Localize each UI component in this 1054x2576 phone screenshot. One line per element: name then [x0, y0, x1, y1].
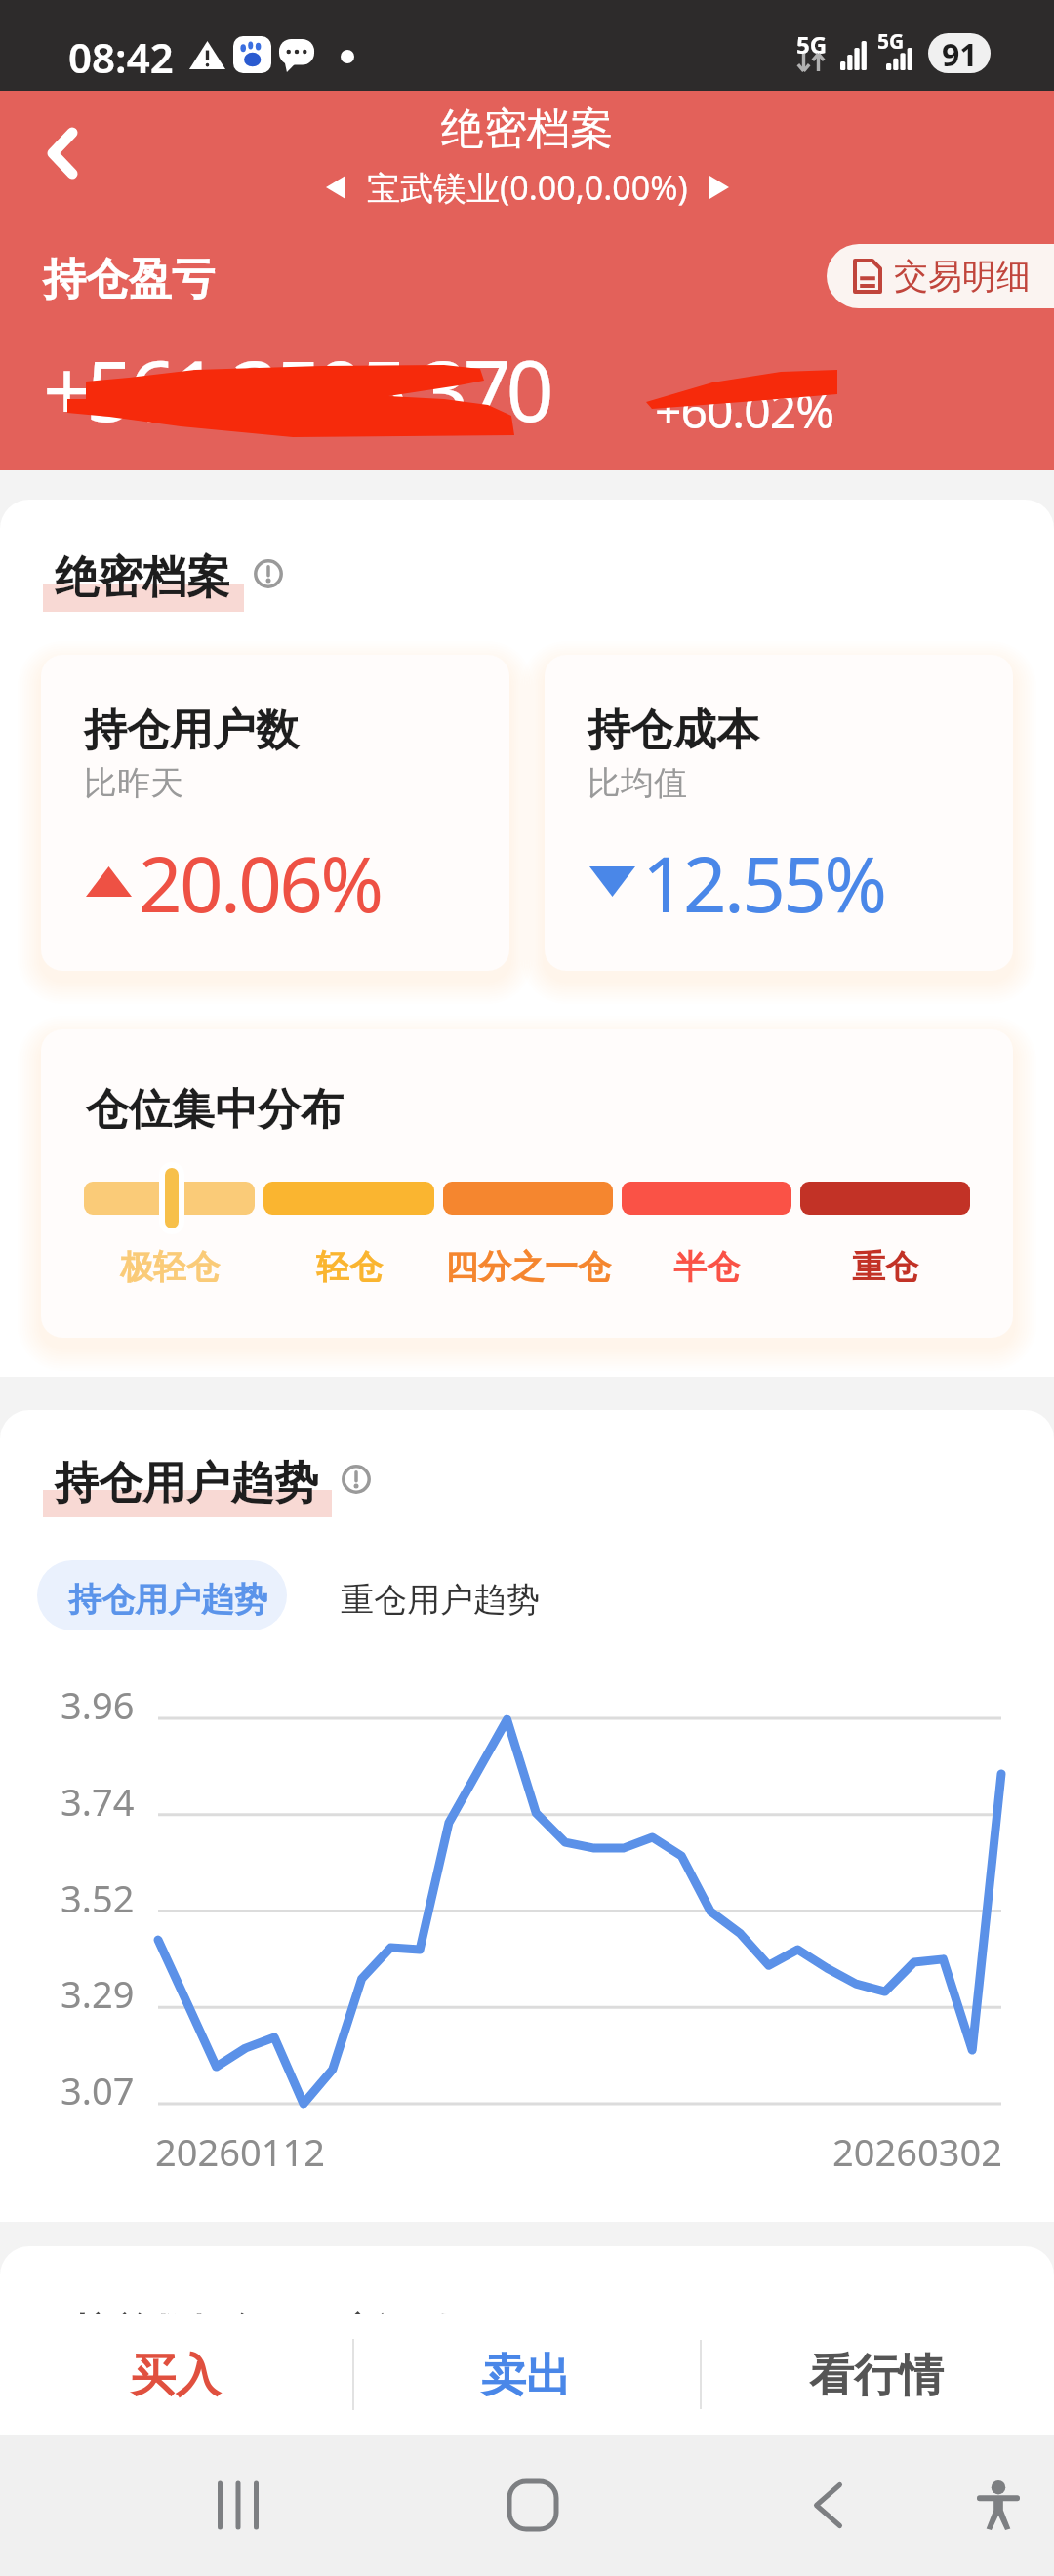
button[interactable]: 持仓成本 [545, 655, 1013, 971]
staticText: 持仓盈亏 [43, 253, 215, 306]
staticText: 重仓 [852, 1246, 918, 1288]
staticText: 重仓用户趋势 [341, 1579, 540, 1621]
staticText: 持仓用户趋势 [68, 1579, 267, 1621]
staticText: 卖出 [481, 2348, 571, 2404]
button[interactable]: 看行情 [759, 2314, 993, 2435]
staticText: 3.96 [61, 1679, 135, 1730]
button[interactable]: Accessibility [940, 2435, 1054, 2576]
staticText: 08:42 [68, 29, 174, 85]
button[interactable]: 持仓用户数 [41, 655, 509, 971]
staticText: 12.55% [642, 831, 885, 935]
staticText: 比昨天 [84, 762, 183, 804]
staticText: 持仓成本 [588, 704, 759, 757]
button[interactable]: Back [18, 108, 107, 198]
staticText: 比均值 [588, 762, 687, 804]
staticText: +561.3595.370 [43, 332, 549, 446]
staticText: 仓位集中分布 [86, 1083, 344, 1137]
staticText: 看行情 [809, 2348, 944, 2404]
staticText: +60.02% [655, 379, 834, 442]
staticText: 3.29 [61, 1968, 135, 2019]
staticText: 持仓用户数 [84, 704, 299, 757]
staticText: 20260302 [832, 2126, 1002, 2177]
staticText: 交易明细 [894, 255, 1031, 298]
staticText: 持仓用户趋势 [55, 1456, 318, 1511]
staticText: 91 [942, 33, 978, 73]
staticText: 半仓 [673, 1246, 740, 1288]
staticText: 四分之一仓 [445, 1246, 611, 1288]
button[interactable]: 重仓用户趋势 [317, 1560, 563, 1630]
staticText: 绝密档案 [55, 550, 230, 606]
staticText: 3.74 [61, 1776, 135, 1827]
staticText: 极轻仓 [120, 1246, 220, 1288]
staticText: 20260112 [155, 2126, 325, 2177]
staticText: 轻仓 [316, 1246, 383, 1288]
staticText: 买入 [131, 2348, 221, 2404]
button[interactable]: Recent apps [180, 2435, 297, 2576]
staticText: 宝武镁业(0.00,0.00%) [367, 165, 688, 210]
button[interactable]: Home [474, 2435, 591, 2576]
staticText: 3.07 [61, 2065, 135, 2115]
staticText: 绝密档案 [441, 102, 613, 156]
staticText: 5G [877, 27, 905, 56]
staticText: 5G [796, 28, 828, 60]
button[interactable]: 卖出 [409, 2314, 643, 2435]
staticText: 3.52 [61, 1872, 135, 1923]
button[interactable]: 持仓用户趋势 [37, 1560, 287, 1630]
button[interactable]: 交易明细 [827, 244, 1054, 308]
button[interactable]: Back [769, 2435, 886, 2576]
staticText: 榜单数据每日更新一次 [73, 2308, 464, 2356]
button[interactable]: 买入 [59, 2314, 293, 2435]
staticText: 20.06% [139, 831, 382, 935]
